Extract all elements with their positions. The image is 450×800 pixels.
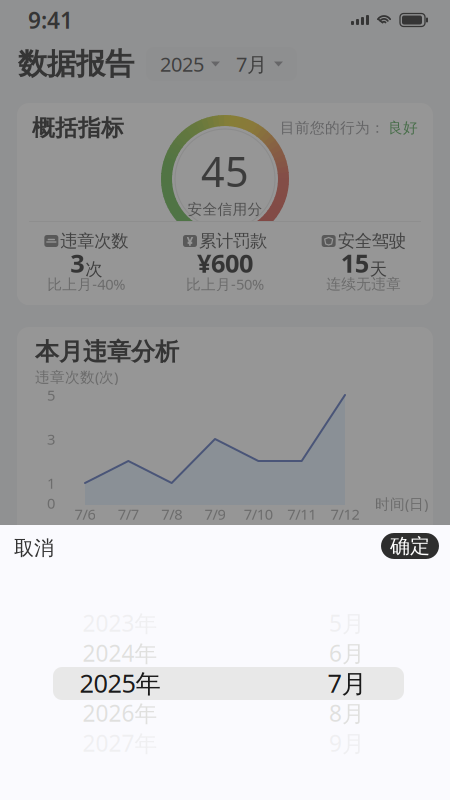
staticText: 0: [47, 493, 55, 513]
staticText: 时间(日): [375, 494, 428, 513]
staticText: 7/9: [204, 504, 225, 524]
button[interactable]: 2025年: [0, 525, 180, 697]
staticText: 3: [47, 429, 55, 449]
staticText: 取消: [14, 536, 54, 560]
staticText: 目前您的行为：: [280, 119, 385, 137]
staticText: 3: [70, 246, 84, 280]
staticText: 15: [341, 246, 369, 280]
button[interactable]: 2026年: [0, 525, 180, 727]
staticText: 45: [201, 143, 249, 198]
staticText: 8月: [329, 698, 365, 728]
button[interactable]: 2025: [146, 47, 297, 81]
staticText: 安全信用分: [187, 200, 262, 218]
staticText: 9月: [329, 728, 365, 758]
staticText: 次: [85, 258, 102, 280]
button[interactable]: 确定: [0, 525, 439, 559]
staticText: 2026年: [82, 698, 157, 728]
button[interactable]: 取消: [0, 525, 60, 563]
button[interactable]: 5月: [0, 525, 407, 637]
staticText: 2025年: [79, 666, 160, 700]
staticText: 7/6: [74, 504, 95, 524]
staticText: 7月: [327, 666, 366, 700]
staticText: 累计罚款: [199, 230, 267, 252]
staticText: 数据报告: [18, 46, 134, 82]
staticText: 比上月-40%: [47, 274, 125, 294]
staticText: 5: [47, 385, 55, 405]
staticText: 7月: [236, 51, 267, 77]
staticText: 比上月-50%: [186, 274, 264, 294]
staticText: 2025: [160, 51, 204, 77]
staticText: 5月: [329, 608, 365, 638]
staticText: 本月违章分析: [35, 337, 179, 366]
button[interactable]: 2024年: [0, 525, 180, 667]
button[interactable]: 6月: [0, 525, 407, 667]
staticText: 7/12: [330, 504, 359, 524]
staticText: 连续无违章: [326, 275, 401, 293]
staticText: 确定: [390, 534, 430, 558]
button[interactable]: 2027年: [0, 525, 180, 757]
staticText: 违章次数: [60, 230, 128, 252]
staticText: 概括指标: [32, 114, 124, 142]
staticText: ¥600: [197, 246, 253, 280]
staticText: 2024年: [82, 638, 157, 668]
button[interactable]: 9月: [0, 525, 407, 757]
staticText: ¥: [186, 233, 193, 249]
staticText: 良好: [388, 119, 418, 137]
staticText: 天: [370, 258, 387, 280]
staticText: 违章次数(次): [35, 367, 118, 386]
staticText: 6月: [329, 638, 365, 668]
staticText: 安全驾驶: [338, 230, 406, 252]
staticText: 7/8: [161, 504, 182, 524]
staticText: 2027年: [82, 728, 157, 758]
staticText: 7/10: [244, 504, 273, 524]
staticText: 7/7: [118, 504, 139, 524]
staticText: 1: [47, 473, 55, 493]
staticText: 7/11: [287, 504, 316, 524]
button[interactable]: 8月: [0, 525, 407, 727]
staticText: 9:41: [28, 5, 73, 35]
button[interactable]: 7月: [0, 525, 407, 697]
staticText: 2023年: [82, 608, 157, 638]
button[interactable]: 2023年: [0, 525, 180, 637]
